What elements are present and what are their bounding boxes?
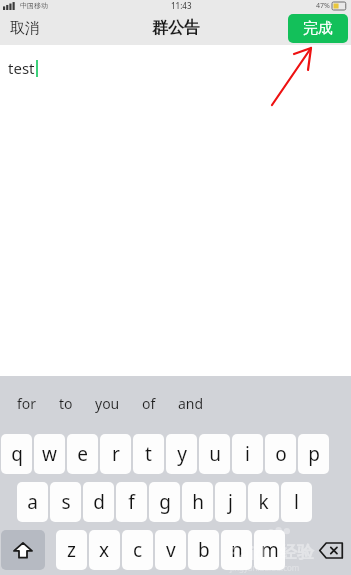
button[interactable]: f bbox=[116, 482, 147, 522]
button[interactable]: z bbox=[56, 530, 87, 570]
staticText: for bbox=[17, 394, 37, 413]
staticText: 取消 bbox=[10, 19, 40, 38]
button[interactable]: for bbox=[6, 388, 48, 419]
staticText: test bbox=[8, 58, 35, 78]
staticText: t bbox=[145, 441, 152, 467]
staticText: w bbox=[42, 441, 57, 467]
button[interactable]: m bbox=[254, 530, 285, 570]
staticText: v bbox=[166, 537, 176, 563]
staticText: b bbox=[198, 537, 210, 563]
staticText: and bbox=[178, 394, 204, 413]
staticText: you bbox=[95, 394, 120, 413]
staticText: jingyan.baidu.com bbox=[230, 562, 300, 573]
button[interactable]: h bbox=[182, 482, 213, 522]
staticText: s bbox=[61, 489, 71, 515]
staticText: r bbox=[112, 441, 120, 467]
staticText: z bbox=[67, 537, 76, 563]
button[interactable]: Shift bbox=[1, 530, 45, 570]
button[interactable]: q bbox=[1, 434, 32, 474]
button[interactable]: 完成 bbox=[288, 14, 348, 43]
button[interactable]: k bbox=[248, 482, 279, 522]
button[interactable]: to bbox=[48, 388, 84, 419]
staticText: 47% bbox=[316, 1, 330, 11]
staticText: m bbox=[261, 537, 279, 563]
button[interactable]: v bbox=[155, 530, 186, 570]
staticText: 11:43 bbox=[171, 0, 192, 11]
button[interactable]: y bbox=[166, 434, 197, 474]
staticText: to bbox=[59, 394, 73, 413]
staticText: a bbox=[27, 489, 38, 515]
button[interactable]: n bbox=[221, 530, 252, 570]
button[interactable]: x bbox=[89, 530, 120, 570]
button[interactable]: l bbox=[281, 482, 312, 522]
staticText: q bbox=[11, 441, 23, 467]
staticText: x bbox=[99, 537, 110, 563]
staticText: Baidu bbox=[228, 542, 277, 565]
button[interactable]: s bbox=[50, 482, 81, 522]
button[interactable]: i bbox=[232, 434, 263, 474]
staticText: of bbox=[142, 394, 156, 413]
button[interactable]: d bbox=[83, 482, 114, 522]
button[interactable]: b bbox=[188, 530, 219, 570]
staticText: k bbox=[258, 489, 269, 515]
staticText: n bbox=[231, 537, 243, 563]
button[interactable]: o bbox=[265, 434, 296, 474]
staticText: 群公告 bbox=[152, 18, 200, 38]
button[interactable]: u bbox=[199, 434, 230, 474]
staticText: c bbox=[133, 537, 143, 563]
button[interactable]: g bbox=[149, 482, 180, 522]
button[interactable]: and bbox=[167, 388, 215, 419]
staticText: 经验 bbox=[280, 542, 314, 563]
staticText: h bbox=[192, 489, 204, 515]
button[interactable]: r bbox=[100, 434, 131, 474]
staticText: 中国移动 bbox=[20, 1, 48, 10]
button[interactable]: w bbox=[34, 434, 65, 474]
staticText: y bbox=[177, 441, 187, 467]
button[interactable]: e bbox=[67, 434, 98, 474]
staticText: i bbox=[245, 441, 250, 467]
staticText: u bbox=[209, 441, 221, 467]
staticText: l bbox=[294, 489, 299, 515]
staticText: j bbox=[228, 489, 233, 515]
staticText: 完成 bbox=[303, 19, 333, 38]
button[interactable]: a bbox=[17, 482, 48, 522]
staticText: e bbox=[77, 441, 88, 467]
button[interactable]: Backspace bbox=[311, 530, 351, 570]
button[interactable]: of bbox=[131, 388, 167, 419]
button[interactable]: c bbox=[122, 530, 153, 570]
button[interactable]: p bbox=[298, 434, 329, 474]
button[interactable]: t bbox=[133, 434, 164, 474]
staticText: f bbox=[128, 489, 135, 515]
staticText: d bbox=[93, 489, 105, 515]
staticText: p bbox=[308, 441, 320, 467]
staticText: g bbox=[159, 489, 171, 515]
staticText: o bbox=[275, 441, 287, 467]
button[interactable]: you bbox=[84, 388, 131, 419]
button[interactable]: j bbox=[215, 482, 246, 522]
button[interactable]: 取消 bbox=[0, 15, 50, 42]
